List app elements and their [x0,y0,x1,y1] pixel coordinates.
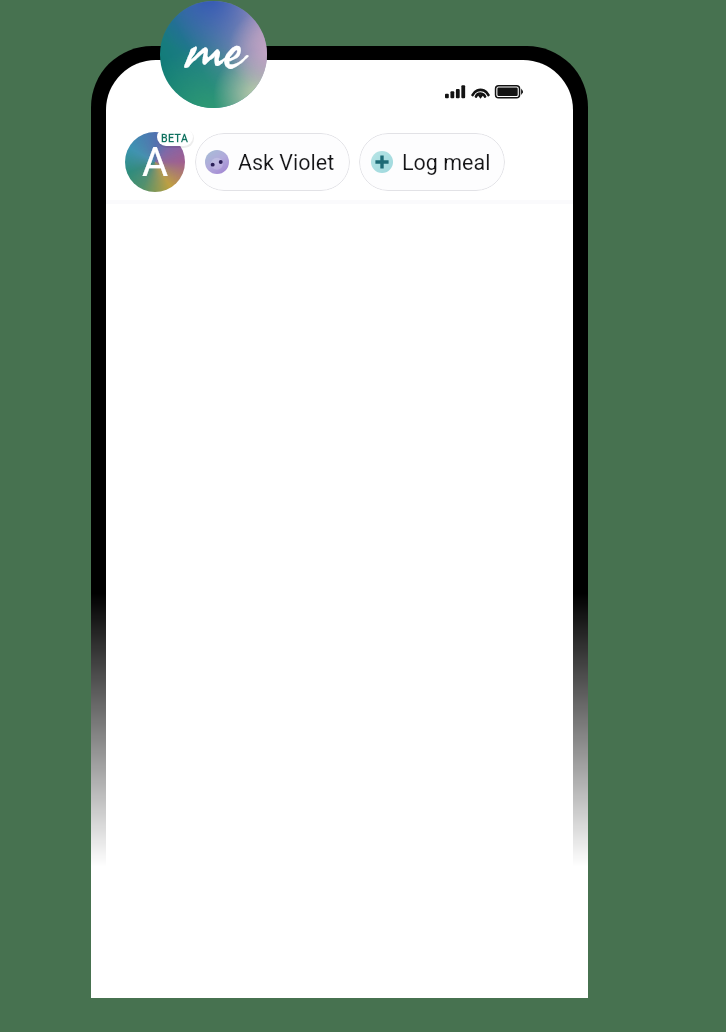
staticText: BETA [161,132,189,144]
button[interactable]: Log meal [359,133,505,191]
staticText: Ask Violet [238,150,335,175]
button[interactable]: Ask Violet [195,133,350,191]
staticText: A [142,139,169,186]
staticText: Log meal [402,150,491,175]
button[interactable]: Profile [125,132,185,192]
other: me logo [160,1,267,108]
staticText: me [187,1,245,100]
